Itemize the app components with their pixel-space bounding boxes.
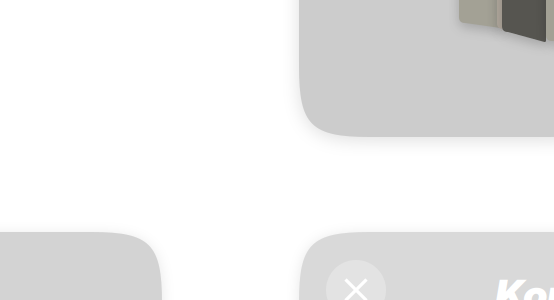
button[interactable]: Dismiss — [326, 260, 386, 300]
staticText: Kon — [495, 270, 554, 300]
